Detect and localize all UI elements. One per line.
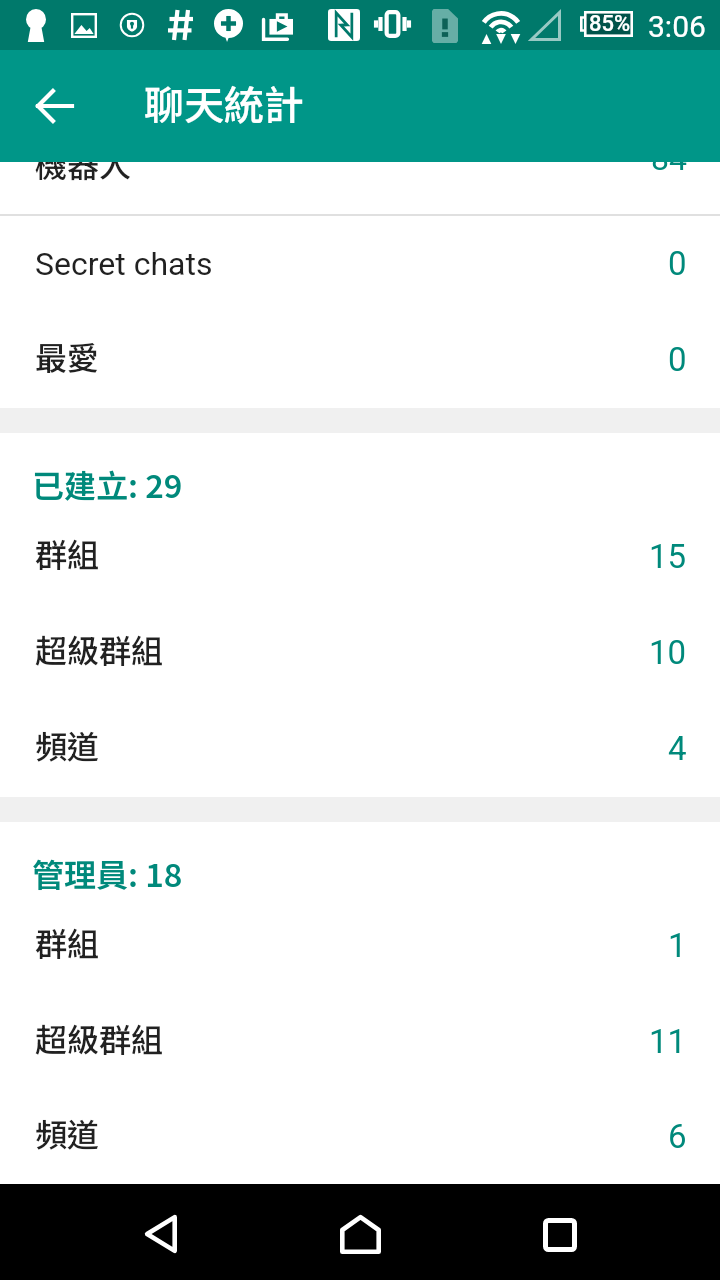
button[interactable]: 群組: [0, 898, 720, 994]
staticText: 群組: [35, 919, 100, 965]
button[interactable]: 最愛: [0, 312, 720, 408]
staticText: 15: [649, 537, 687, 576]
staticText: 3:06: [648, 9, 706, 44]
staticText: 84: [651, 162, 687, 178]
staticText: Secret chats: [35, 245, 213, 283]
staticText: 群組: [35, 530, 100, 576]
staticText: 0: [668, 340, 687, 379]
staticText: 1: [668, 926, 687, 965]
staticText: 11: [649, 1022, 687, 1061]
staticText: 4: [668, 729, 687, 768]
staticText: 超級群組: [35, 1015, 164, 1061]
staticText: 0: [668, 244, 687, 283]
staticText: 管理員: 18: [32, 850, 183, 896]
staticText: 超級群組: [35, 626, 164, 672]
button[interactable]: Secret chats: [0, 216, 720, 312]
staticText: 頻道: [35, 722, 100, 768]
staticText: 機器人: [35, 162, 132, 186]
button[interactable]: 頻道: [0, 701, 720, 797]
staticText: 85%: [589, 11, 631, 37]
button[interactable]: 超級群組: [0, 605, 720, 701]
staticText: 頻道: [35, 1110, 100, 1156]
staticText: 10: [649, 633, 687, 672]
staticText: 已建立: 29: [32, 461, 183, 507]
button[interactable]: Recent apps: [520, 1198, 600, 1272]
button[interactable]: Home: [320, 1197, 400, 1271]
staticText: 最愛: [35, 333, 100, 379]
staticText: 6: [668, 1117, 687, 1156]
button[interactable]: 超級群組: [0, 994, 720, 1090]
staticText: 聊天統計: [144, 74, 304, 132]
button[interactable]: Back: [120, 1197, 200, 1271]
button[interactable]: Back: [16, 67, 94, 145]
button[interactable]: 機器人: [0, 162, 720, 214]
button[interactable]: 頻道: [0, 1090, 720, 1184]
button[interactable]: 群組: [0, 509, 720, 605]
